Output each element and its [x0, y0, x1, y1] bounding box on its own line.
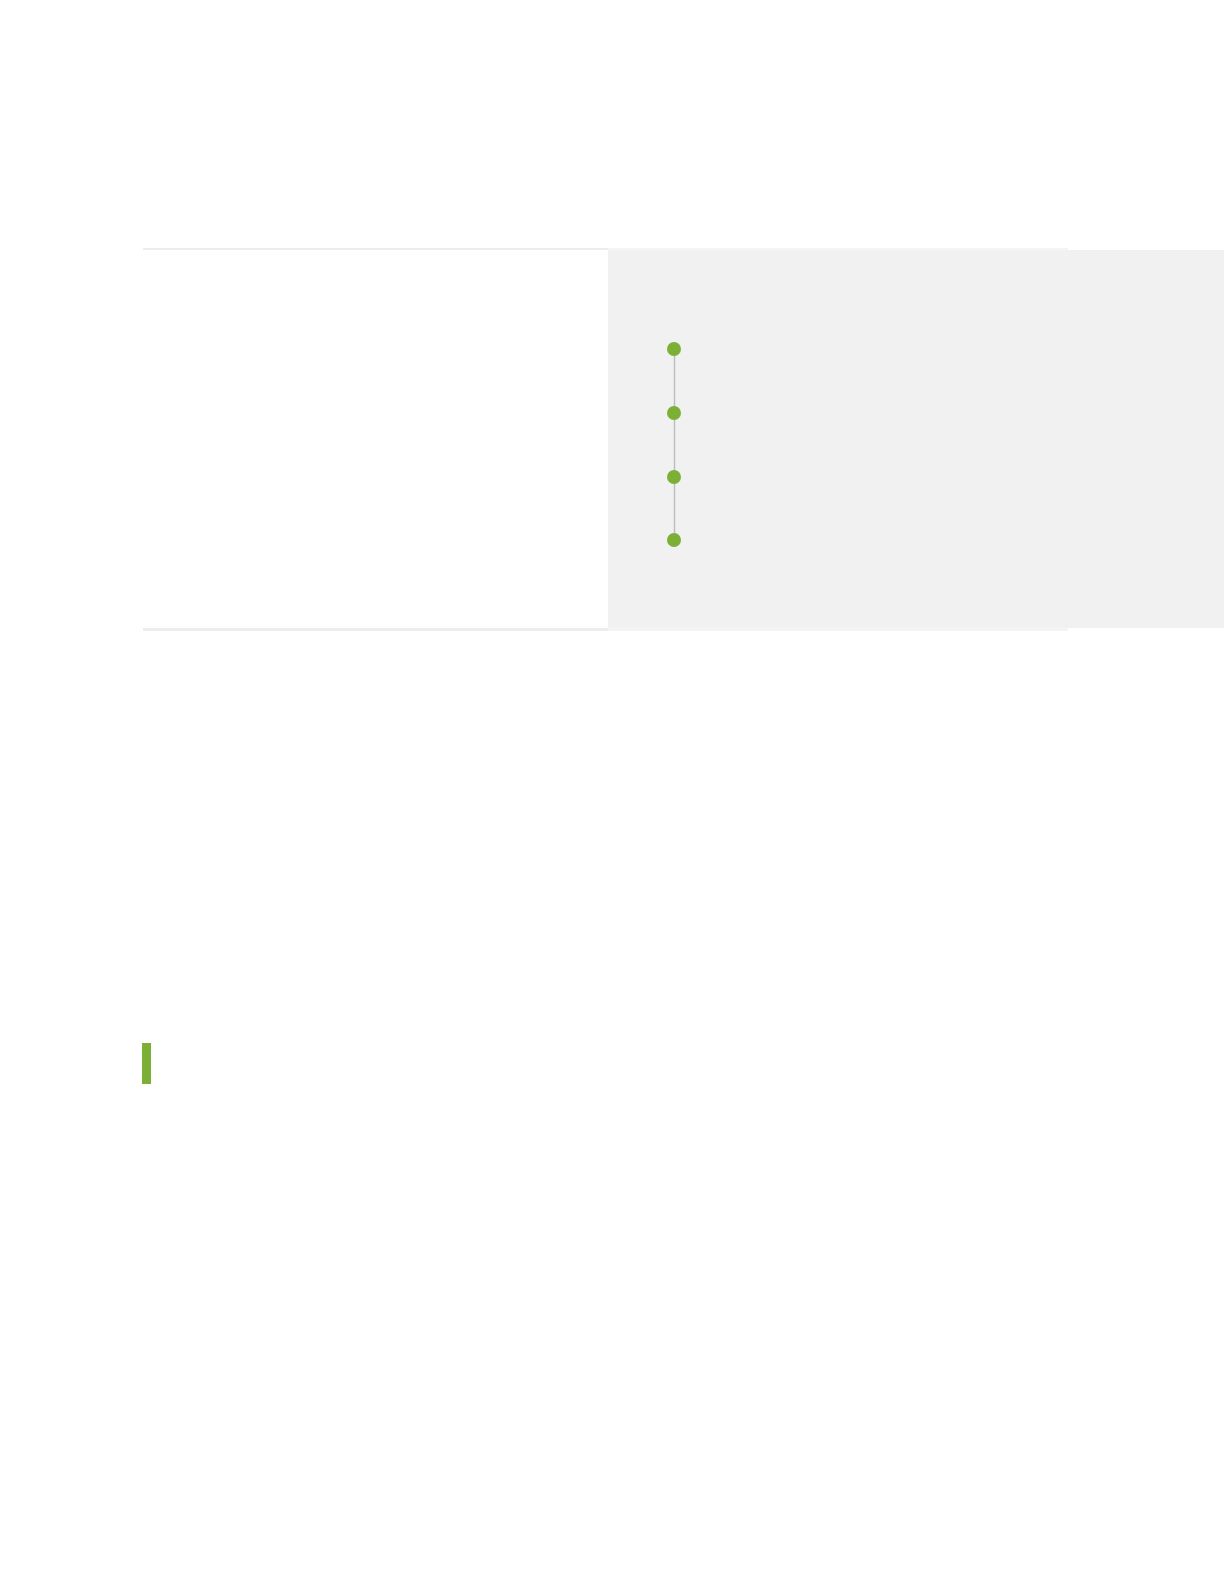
button[interactable]: Timeline step 3 [658, 461, 690, 493]
button[interactable]: Timeline step 1 [658, 333, 690, 365]
button[interactable]: Timeline step 2 [658, 397, 690, 429]
button[interactable]: Timeline step 4 [658, 524, 690, 556]
